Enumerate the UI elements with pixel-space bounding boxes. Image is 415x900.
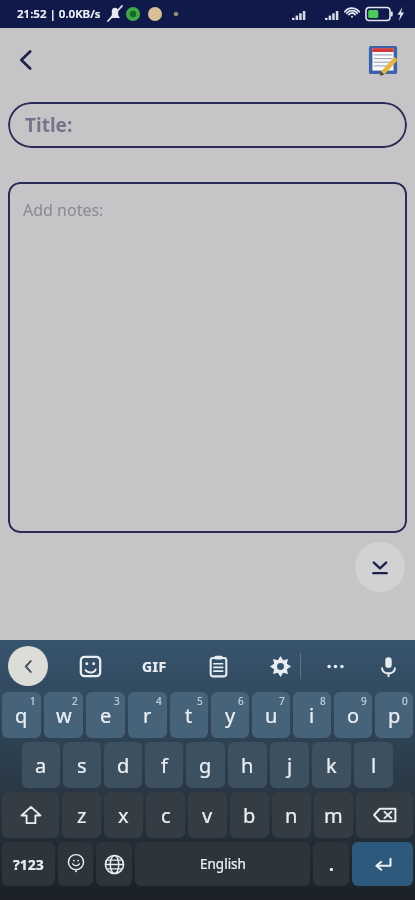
- button[interactable]: z: [62, 792, 101, 838]
- button[interactable]: t: [170, 692, 208, 738]
- staticText: ?123: [13, 855, 44, 874]
- staticText: e: [100, 702, 112, 729]
- staticText: Title:: [25, 112, 73, 138]
- button[interactable]: b: [230, 792, 269, 838]
- button[interactable]: u: [252, 692, 290, 738]
- button[interactable]: GIF: [132, 644, 176, 688]
- button[interactable]: v: [188, 792, 227, 838]
- button[interactable]: r: [128, 692, 167, 738]
- button[interactable]: Clipboard: [198, 646, 238, 686]
- staticText: s: [77, 752, 87, 779]
- button[interactable]: j: [270, 742, 309, 788]
- staticText: 3: [114, 694, 120, 708]
- button[interactable]: f: [145, 742, 183, 788]
- staticText: n: [285, 802, 298, 829]
- staticText: l: [371, 752, 377, 779]
- button[interactable]: Enter: [352, 842, 413, 886]
- staticText: w: [56, 702, 72, 729]
- button[interactable]: d: [104, 742, 142, 788]
- button[interactable]: Title:: [8, 102, 407, 148]
- staticText: 9: [361, 694, 367, 708]
- staticText: GIF: [142, 657, 167, 676]
- staticText: h: [241, 752, 254, 779]
- staticText: r: [143, 702, 152, 729]
- staticText: j: [287, 752, 293, 779]
- staticText: d: [117, 752, 130, 779]
- button[interactable]: Hide keyboard: [355, 542, 405, 592]
- button[interactable]: Edit note: [361, 38, 405, 82]
- staticText: t: [185, 702, 193, 729]
- staticText: 21:52 | 0.0KB/s: [17, 6, 101, 22]
- button[interactable]: i: [293, 692, 331, 738]
- staticText: 4: [156, 694, 162, 708]
- staticText: y: [225, 702, 236, 729]
- button[interactable]: Backspace: [356, 792, 413, 838]
- button[interactable]: Emoji: [58, 842, 93, 886]
- button[interactable]: y: [211, 692, 249, 738]
- button[interactable]: More options: [315, 646, 355, 686]
- button[interactable]: n: [272, 792, 311, 838]
- button[interactable]: Stickers: [70, 646, 110, 686]
- button[interactable]: Change language: [96, 842, 132, 886]
- button[interactable]: Add notes:: [8, 182, 407, 533]
- button[interactable]: g: [186, 742, 225, 788]
- button[interactable]: c: [146, 792, 185, 838]
- button[interactable]: .: [313, 842, 349, 886]
- button[interactable]: a: [22, 742, 60, 788]
- button[interactable]: s: [63, 742, 101, 788]
- button[interactable]: Back: [4, 38, 48, 82]
- staticText: 0: [402, 694, 408, 708]
- staticText: 1: [30, 694, 36, 708]
- button[interactable]: o: [334, 692, 372, 738]
- staticText: v: [202, 802, 213, 829]
- staticText: z: [77, 802, 87, 829]
- staticText: 6: [238, 694, 244, 708]
- staticText: 5: [197, 694, 203, 708]
- button[interactable]: x: [104, 792, 143, 838]
- button[interactable]: h: [228, 742, 267, 788]
- button[interactable]: k: [312, 742, 351, 788]
- button[interactable]: q: [2, 692, 41, 738]
- staticText: i: [309, 702, 315, 729]
- staticText: k: [326, 752, 337, 779]
- button[interactable]: p: [375, 692, 413, 738]
- staticText: f: [161, 752, 168, 779]
- staticText: q: [15, 702, 28, 729]
- staticText: p: [388, 702, 401, 729]
- button[interactable]: ?123: [2, 842, 55, 886]
- staticText: x: [118, 802, 129, 829]
- button[interactable]: Settings: [260, 646, 300, 686]
- button[interactable]: w: [44, 692, 83, 738]
- staticText: g: [199, 752, 212, 779]
- staticText: m: [324, 802, 343, 829]
- button[interactable]: Voice input: [369, 646, 407, 686]
- staticText: 2: [72, 694, 78, 708]
- staticText: o: [347, 702, 360, 729]
- staticText: u: [265, 702, 278, 729]
- button[interactable]: English: [135, 842, 310, 886]
- button[interactable]: Shift: [2, 792, 59, 838]
- staticText: .: [329, 853, 334, 876]
- button[interactable]: Back: [8, 646, 48, 686]
- staticText: 8: [320, 694, 326, 708]
- staticText: English: [200, 855, 246, 873]
- button[interactable]: m: [314, 792, 353, 838]
- staticText: a: [35, 752, 47, 779]
- button[interactable]: l: [354, 742, 393, 788]
- staticText: 7: [279, 694, 285, 708]
- button[interactable]: e: [86, 692, 125, 738]
- staticText: Add notes:: [23, 199, 104, 221]
- staticText: c: [161, 802, 171, 829]
- staticText: b: [243, 802, 256, 829]
